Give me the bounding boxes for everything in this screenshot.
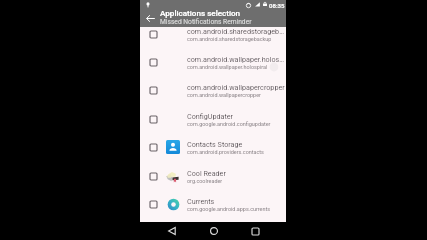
- button[interactable]: Currents: [140, 190, 286, 218]
- staticText: com.android.wallpapercropper: [187, 92, 261, 98]
- button[interactable]: com.android.wallpaper.holos…: [140, 48, 286, 76]
- staticText: com.android.wallpaper.holospiral: [187, 64, 268, 70]
- staticText: Missed Notifications Reminder: [160, 18, 252, 26]
- button[interactable]: ConfigUpdater: [140, 105, 286, 133]
- staticText: Contacts Storage: [187, 140, 243, 148]
- button[interactable]: Contacts Storage: [140, 133, 286, 161]
- button[interactable]: Back: [164, 224, 178, 238]
- staticText: com.android.sharedstorageb…: [187, 27, 284, 35]
- button[interactable]: Home: [207, 224, 221, 238]
- staticText: com.android.sharedstoragebackup: [187, 36, 272, 42]
- staticText: Applications selection: [160, 8, 241, 17]
- button[interactable]: Cool Reader: [140, 162, 286, 190]
- staticText: Cool Reader: [187, 169, 226, 177]
- staticText: 08:35: [269, 2, 285, 9]
- staticText: org.coolreader: [187, 178, 223, 184]
- staticText: ConfigUpdater: [187, 112, 234, 120]
- button[interactable]: com.android.wallpapercropper: [140, 76, 286, 104]
- staticText: com.android.wallpapercropper: [187, 83, 285, 91]
- staticText: com.google.android.apps.currents: [187, 206, 271, 212]
- staticText: com.android.wallpaper.holos…: [187, 55, 285, 63]
- button[interactable]: Recents: [248, 224, 262, 238]
- staticText: com.android.providers.contacts: [187, 149, 264, 155]
- button[interactable]: Back: [142, 10, 158, 26]
- staticText: Currents: [187, 197, 215, 205]
- button[interactable]: com.android.sharedstorageb…: [140, 27, 286, 48]
- staticText: com.google.android.configupdater: [187, 121, 271, 127]
